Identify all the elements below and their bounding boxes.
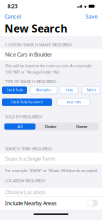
staticText: Include Nearby Areas	[5, 200, 57, 207]
staticText: Cancel	[4, 13, 20, 20]
staticText: TYPE OF SEARCH (REQUIRED)	[5, 79, 56, 84]
button[interactable]: Motorcycles	[30, 86, 57, 94]
staticText: Save	[85, 13, 97, 20]
staticText: CUSTOM SEARCH NAME (REQUIRED)	[5, 42, 72, 47]
staticText: This will be listed on the main screen. …	[5, 63, 92, 68]
staticText: SEARCH TERM (REQUIRED)	[5, 146, 52, 151]
staticText: Dealer	[45, 124, 57, 129]
staticText: LOCATION (REQUIRED)	[5, 178, 45, 183]
button[interactable]: Auto Parts	[57, 98, 90, 106]
staticText: Nice Cars in Boulder	[5, 51, 52, 58]
staticText: 'DB 900' or 'No Jags/Under $5k'.	[5, 69, 61, 75]
button[interactable]: Cars & Trucks (by owner)	[2, 98, 52, 106]
staticText: Motorcycles	[36, 88, 51, 92]
staticText: Owner	[76, 124, 88, 129]
button[interactable]: All	[4, 123, 35, 130]
staticText: Choose Location	[5, 189, 45, 196]
staticText: All	[17, 124, 22, 129]
staticText: New Search	[4, 21, 67, 35]
staticText: Cars & Trucks	[6, 88, 22, 92]
button[interactable]: Dealer	[35, 123, 67, 130]
button[interactable]: Trailers	[82, 86, 100, 94]
staticText: Cars & Trucks (by owner)	[11, 100, 43, 104]
button[interactable]: Choose Location	[0, 188, 102, 196]
staticText: Auto Parts	[66, 100, 80, 104]
staticText: Trailers	[86, 88, 95, 92]
button[interactable]: Include Nearby Areas	[0, 197, 102, 210]
button[interactable]: Cars & Trucks	[2, 86, 27, 94]
button[interactable]: Owner	[66, 123, 98, 130]
button[interactable]: Boats	[60, 86, 78, 94]
staticText: Search a Single Term	[5, 155, 55, 162]
button[interactable]: Save	[84, 12, 98, 21]
staticText: 8:23	[7, 3, 17, 10]
staticText: Boats	[65, 88, 72, 92]
staticText: SOLD BY (REQUIRED)	[5, 114, 42, 119]
button[interactable]: Cancel	[3, 12, 21, 21]
staticText: For example: 'BMW' or 'Miata' (Wildcards…	[5, 168, 97, 173]
